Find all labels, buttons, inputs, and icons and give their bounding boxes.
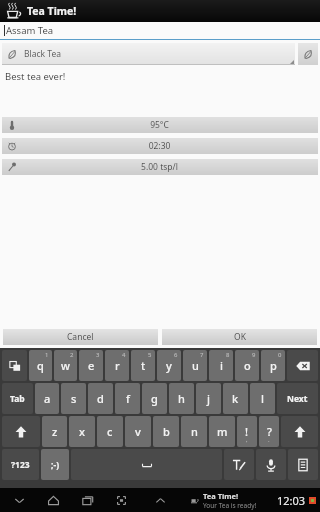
button[interactable]: ? xyxy=(259,416,279,447)
staticText: Tea Time! xyxy=(203,491,239,501)
button[interactable]: d xyxy=(88,383,113,414)
button[interactable]: Tea Time xyxy=(0,0,320,22)
button[interactable]: h xyxy=(169,383,194,414)
button[interactable] xyxy=(2,350,27,381)
button[interactable]: Home xyxy=(44,491,62,509)
staticText: u xyxy=(192,358,199,373)
button[interactable]: Black Tea xyxy=(2,43,295,65)
button[interactable]: b xyxy=(153,416,179,447)
staticText: t xyxy=(141,358,146,373)
button[interactable]: s xyxy=(61,383,86,414)
button[interactable]: ?123 xyxy=(2,449,39,480)
button[interactable]: p xyxy=(261,350,285,381)
staticText: j xyxy=(207,391,210,406)
button[interactable]: t xyxy=(131,350,155,381)
button[interactable]: Back xyxy=(10,491,28,509)
button[interactable]: y xyxy=(157,350,181,381)
button[interactable]: Screenshot xyxy=(112,491,130,509)
staticText: q xyxy=(37,358,44,373)
button[interactable]: v xyxy=(125,416,151,447)
button[interactable]: 02:30 xyxy=(2,138,318,154)
button[interactable]: Cancel xyxy=(3,329,158,345)
other: Tea Time xyxy=(4,2,22,20)
staticText: Assam Tea xyxy=(6,24,54,37)
staticText: Black Tea xyxy=(24,48,62,60)
button[interactable]: 95°C xyxy=(2,117,318,133)
staticText: 3 xyxy=(96,351,100,359)
button[interactable]: Tea Time! xyxy=(203,491,257,510)
button[interactable]: ;-) xyxy=(41,449,69,480)
button[interactable]: n xyxy=(181,416,207,447)
staticText: z xyxy=(52,424,58,439)
staticText: 1 xyxy=(45,351,49,359)
staticText: 12:03 xyxy=(277,493,306,508)
staticText: r xyxy=(115,358,120,373)
staticText: ;-) xyxy=(51,459,60,471)
button[interactable]: j xyxy=(196,383,221,414)
staticText: 5.00 tsp/l xyxy=(9,161,310,173)
button[interactable]: Shift xyxy=(281,416,318,447)
button[interactable]: Handwriting xyxy=(224,449,254,480)
button[interactable]: Edit variety xyxy=(298,43,318,65)
staticText: k xyxy=(232,391,239,406)
button[interactable]: Assam Tea xyxy=(0,22,320,40)
button[interactable]: r xyxy=(105,350,129,381)
staticText: a xyxy=(44,391,51,406)
button[interactable]: z xyxy=(42,416,67,447)
staticText: v xyxy=(135,424,141,439)
button[interactable]: k xyxy=(223,383,248,414)
button[interactable]: o xyxy=(235,350,259,381)
button[interactable]: Recents xyxy=(78,491,96,509)
staticText: m xyxy=(217,424,228,439)
staticText: 5 xyxy=(148,351,152,359)
button[interactable]: l xyxy=(250,383,275,414)
staticText: . xyxy=(268,436,270,444)
button[interactable]: OK xyxy=(162,329,317,345)
button[interactable]: Shift xyxy=(2,416,40,447)
button[interactable]: x xyxy=(69,416,95,447)
staticText: 02:30 xyxy=(9,140,310,152)
button[interactable]: Tab xyxy=(2,383,33,414)
staticText: g xyxy=(151,391,158,406)
button[interactable]: Notifications xyxy=(151,491,169,509)
button[interactable]: Voice input xyxy=(256,449,286,480)
button[interactable]: ! xyxy=(237,416,257,447)
staticText: 95°C xyxy=(9,119,310,131)
button[interactable]: e xyxy=(79,350,103,381)
staticText: i xyxy=(220,358,223,373)
staticText: n xyxy=(191,424,198,439)
button[interactable]: Next xyxy=(277,383,318,414)
staticText: 9 xyxy=(252,351,256,359)
staticText: 7 xyxy=(200,351,204,359)
staticText: l xyxy=(261,391,264,406)
staticText: 0 xyxy=(278,351,282,359)
button[interactable]: u xyxy=(183,350,207,381)
staticText: 8 xyxy=(226,351,230,359)
button[interactable]: q xyxy=(29,350,52,381)
button[interactable]: Delete xyxy=(287,350,318,381)
button[interactable]: w xyxy=(54,350,77,381)
button[interactable]: 5.00 tsp/l xyxy=(2,159,318,175)
staticText: p xyxy=(270,358,277,373)
staticText: y xyxy=(166,358,172,373)
button[interactable]: c xyxy=(97,416,123,447)
staticText: s xyxy=(71,391,77,406)
staticText: h xyxy=(178,391,185,406)
staticText: o xyxy=(244,358,251,373)
staticText: w xyxy=(61,358,70,373)
button[interactable]: Space xyxy=(71,449,222,480)
staticText: OK xyxy=(234,331,246,343)
staticText: d xyxy=(97,391,104,406)
staticText: Cancel xyxy=(67,331,94,343)
button[interactable]: i xyxy=(209,350,233,381)
staticText: Tab xyxy=(10,393,25,405)
staticText: , xyxy=(246,436,248,444)
staticText: e xyxy=(88,358,95,373)
staticText: 6 xyxy=(174,351,178,359)
button[interactable]: a xyxy=(35,383,59,414)
button[interactable]: f xyxy=(115,383,140,414)
staticText: b xyxy=(163,424,170,439)
button[interactable]: Clipboard xyxy=(288,449,318,480)
button[interactable]: m xyxy=(209,416,235,447)
button[interactable]: g xyxy=(142,383,167,414)
